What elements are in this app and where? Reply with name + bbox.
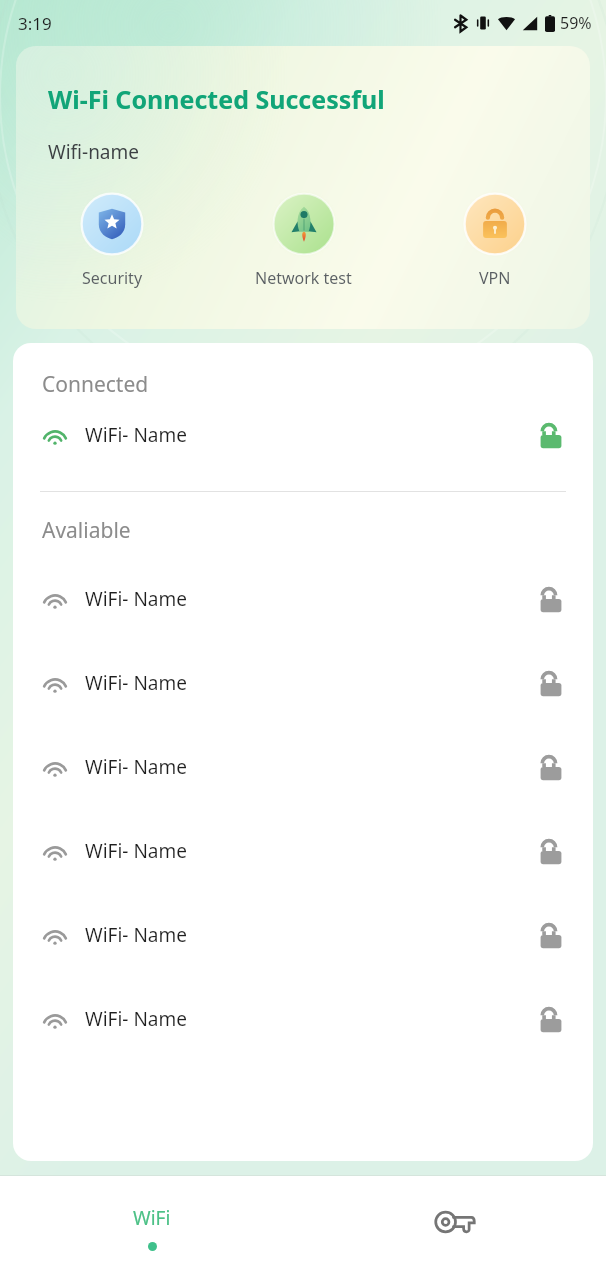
button[interactable]: WiFi- Name <box>13 725 593 809</box>
staticText: 3:19 <box>18 12 52 35</box>
staticText: Wi-Fi Connected Successful <box>48 82 385 116</box>
staticText: WiFi- Name <box>85 922 187 948</box>
staticText: WiFi- Name <box>85 586 187 612</box>
staticText: WiFi- Name <box>85 838 187 864</box>
staticText: Wifi-name <box>48 139 140 165</box>
staticText: Avaliable <box>42 516 131 545</box>
staticText: Network test <box>255 267 352 289</box>
staticText: WiFi- Name <box>85 422 187 448</box>
button[interactable]: WiFi- Name <box>13 977 593 1061</box>
button[interactable]: Saved passwords <box>303 1176 606 1280</box>
button[interactable]: WiFi- Name <box>13 407 593 463</box>
staticText: WiFi- Name <box>85 1006 187 1032</box>
staticText: Connected <box>42 370 149 399</box>
button[interactable]: WiFi- Name <box>13 809 593 893</box>
button[interactable]: WiFi- Name <box>13 641 593 725</box>
button[interactable]: WiFi <box>0 1176 303 1280</box>
button[interactable]: Network test <box>208 189 399 291</box>
button[interactable]: WiFi- Name <box>13 557 593 641</box>
button[interactable]: VPN <box>399 189 590 291</box>
staticText: WiFi- Name <box>85 670 187 696</box>
button[interactable]: WiFi- Name <box>13 893 593 977</box>
staticText: Security <box>82 267 143 289</box>
button[interactable]: Security <box>16 189 208 291</box>
staticText: WiFi- Name <box>85 754 187 780</box>
staticText: WiFi <box>133 1205 171 1231</box>
staticText: 59% <box>560 12 592 34</box>
staticText: VPN <box>479 267 511 289</box>
